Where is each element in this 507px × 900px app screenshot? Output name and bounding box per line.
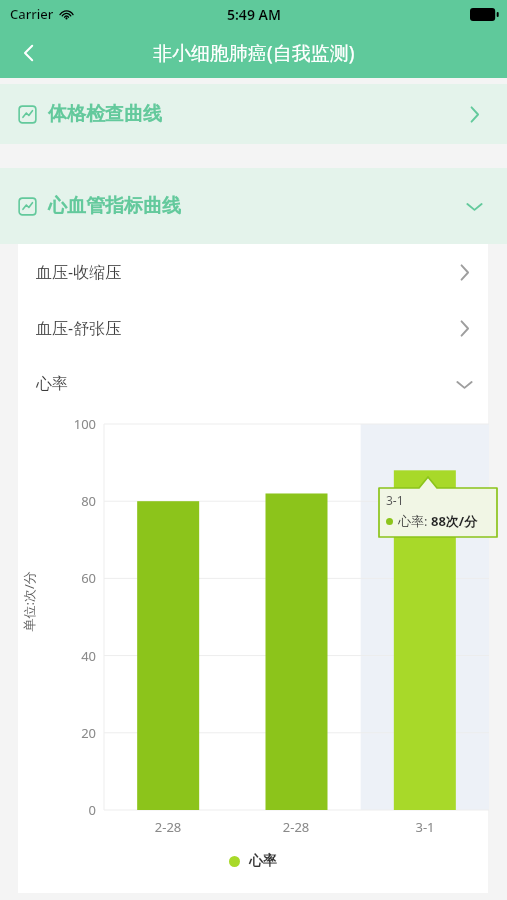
staticText: 血压-舒张压 bbox=[36, 317, 122, 339]
button[interactable]: Back bbox=[0, 28, 58, 78]
staticText: 0 bbox=[18, 801, 96, 819]
staticText: 3-1 bbox=[361, 818, 489, 836]
staticText: 非小细胞肺癌(自我监测) bbox=[153, 40, 355, 66]
staticText: 心率 bbox=[36, 374, 68, 394]
staticText: 心率 bbox=[249, 852, 277, 870]
staticText: 88次/分 bbox=[431, 512, 478, 530]
button[interactable]: 血压-舒张压 bbox=[18, 300, 488, 356]
staticText: 体格检查曲线 bbox=[48, 102, 162, 126]
button[interactable]: 血压-收缩压 bbox=[18, 244, 488, 300]
button[interactable]: 体格检查曲线 bbox=[0, 84, 507, 144]
staticText: 心血管指标曲线 bbox=[48, 194, 181, 218]
staticText: Carrier bbox=[10, 5, 54, 23]
staticText: 心率: bbox=[398, 512, 431, 530]
staticText: 2-28 bbox=[104, 818, 232, 836]
button[interactable]: 心率 bbox=[18, 356, 488, 412]
staticText: 2-28 bbox=[232, 818, 360, 836]
staticText: 60 bbox=[18, 569, 96, 587]
staticText: 100 bbox=[18, 415, 96, 433]
staticText: 80 bbox=[18, 492, 96, 510]
staticText: 20 bbox=[18, 724, 96, 742]
button[interactable]: 心血管指标曲线 bbox=[0, 168, 507, 244]
staticText: 3-1 bbox=[386, 492, 404, 508]
staticText: 血压-收缩压 bbox=[36, 261, 122, 283]
staticText: 5:49 AM bbox=[227, 5, 281, 24]
staticText: 单位:次/分 bbox=[19, 570, 37, 631]
staticText: 40 bbox=[18, 647, 96, 665]
